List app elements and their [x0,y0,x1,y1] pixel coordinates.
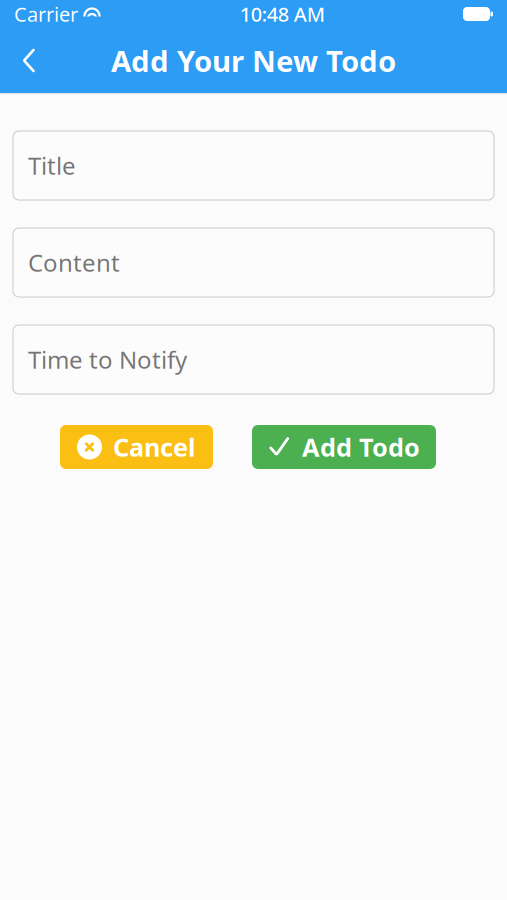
staticText: 10:48 AM [240,1,325,27]
staticText: Content [28,247,120,278]
staticText: Add Todo [302,430,420,464]
button[interactable]: Content [13,228,494,297]
staticText: Cancel [113,430,196,464]
button[interactable]: Time to Notify [13,325,494,394]
button[interactable]: Back [6,37,52,83]
staticText: Add Your New Todo [111,41,396,80]
staticText: Time to Notify [28,344,187,375]
staticText: Title [28,150,76,181]
button[interactable]: Add Todo [252,425,436,469]
staticText: Carrier [14,1,78,27]
button[interactable]: Title [13,131,494,200]
button[interactable]: Cancel [60,425,213,469]
